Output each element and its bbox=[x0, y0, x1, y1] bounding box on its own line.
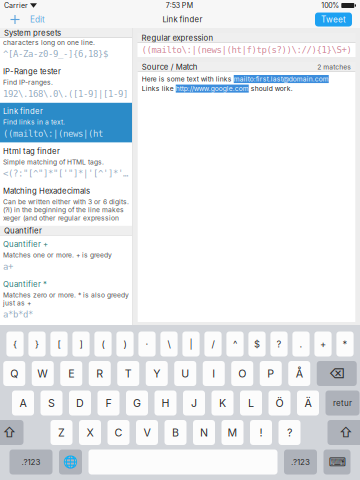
staticText: .?123 bbox=[21, 457, 40, 467]
button[interactable]: Quantifier * bbox=[0, 276, 132, 323]
button[interactable]: X bbox=[79, 420, 101, 445]
button[interactable]: Optionality ? bbox=[0, 323, 132, 340]
button[interactable]: ] bbox=[72, 331, 90, 356]
staticText: N bbox=[200, 426, 208, 439]
button[interactable]: .?123 bbox=[284, 449, 317, 474]
staticText: ⌨ bbox=[328, 455, 345, 469]
button[interactable]: ? bbox=[278, 420, 300, 445]
button[interactable]: W bbox=[32, 361, 54, 386]
staticText: a*b*d* bbox=[3, 309, 33, 320]
button[interactable]: T bbox=[117, 361, 139, 386]
button[interactable]: [ bbox=[50, 331, 68, 356]
button[interactable]: Link finder bbox=[0, 103, 132, 143]
button[interactable]: Html tag finder bbox=[0, 143, 132, 182]
button[interactable]: . bbox=[292, 331, 310, 356]
staticText: Ö bbox=[275, 396, 283, 409]
button[interactable]: / bbox=[204, 331, 222, 356]
button[interactable]: * bbox=[336, 331, 354, 356]
button[interactable]: ? bbox=[270, 331, 288, 356]
button[interactable]: ⇧ bbox=[0, 420, 23, 445]
button[interactable]: Add preset bbox=[5, 11, 25, 27]
button[interactable]: R bbox=[89, 361, 111, 386]
button[interactable]: S bbox=[40, 390, 62, 415]
button[interactable]: ⇧ bbox=[327, 420, 360, 445]
staticText: Find IP-ranges. bbox=[3, 78, 53, 86]
button[interactable]: Z bbox=[50, 420, 72, 445]
staticText: H bbox=[161, 396, 169, 409]
button[interactable]: 🌐 bbox=[59, 449, 82, 474]
button[interactable]: { bbox=[6, 331, 24, 356]
button[interactable]: Ö bbox=[268, 390, 290, 415]
staticText: ⇧ bbox=[339, 424, 353, 440]
staticText: ) bbox=[123, 338, 126, 350]
button[interactable]: H bbox=[154, 390, 176, 415]
button[interactable]: retur bbox=[325, 390, 359, 415]
button[interactable]: G bbox=[126, 390, 148, 415]
button[interactable]: F bbox=[97, 390, 119, 415]
button[interactable]: M bbox=[221, 420, 243, 445]
button[interactable]: \ bbox=[160, 331, 178, 356]
staticText: { bbox=[13, 338, 17, 350]
button[interactable]: J bbox=[183, 390, 205, 415]
staticText: T bbox=[125, 367, 132, 380]
button[interactable]: Quantifier + bbox=[0, 236, 132, 276]
button[interactable]: ⌫ bbox=[317, 361, 357, 386]
staticText: Quantifier * bbox=[3, 279, 47, 289]
button[interactable]: Matching Hexadecimals bbox=[0, 182, 132, 226]
staticText: U bbox=[181, 367, 189, 380]
button[interactable]: B bbox=[164, 420, 186, 445]
button[interactable]: $ bbox=[248, 331, 266, 356]
staticText: ? bbox=[276, 338, 281, 350]
staticText: Optionality ? bbox=[3, 327, 50, 337]
button[interactable]: K bbox=[211, 390, 233, 415]
button[interactable]: } bbox=[28, 331, 46, 356]
button[interactable]: characters long on one line. bbox=[0, 38, 132, 63]
staticText: ^[A-Za-z0-9_-]{6,18}$ bbox=[3, 49, 108, 59]
staticText: Matching Hexadecimals bbox=[3, 186, 90, 196]
button[interactable]: Edit bbox=[25, 11, 50, 27]
button[interactable]: Y bbox=[146, 361, 168, 386]
button[interactable]: U bbox=[174, 361, 196, 386]
button[interactable]: Å bbox=[288, 361, 310, 386]
button[interactable]: Q bbox=[3, 361, 25, 386]
button[interactable]: .?123 bbox=[9, 449, 52, 474]
button[interactable]: P bbox=[260, 361, 282, 386]
button[interactable]: D bbox=[69, 390, 91, 415]
staticText: $ bbox=[254, 338, 260, 350]
button[interactable]: ! bbox=[250, 420, 272, 445]
staticText: · bbox=[145, 338, 148, 350]
button[interactable]: C bbox=[107, 420, 129, 445]
staticText: Quantifier + bbox=[3, 240, 48, 249]
button[interactable]: N bbox=[193, 420, 215, 445]
staticText: Link finder bbox=[3, 107, 43, 116]
button[interactable]: E bbox=[60, 361, 82, 386]
button[interactable]: V bbox=[136, 420, 158, 445]
staticText: Source / Match bbox=[142, 62, 198, 72]
button[interactable]: Ä bbox=[297, 390, 319, 415]
button[interactable]: I bbox=[203, 361, 225, 386]
button[interactable]: ⌨ bbox=[323, 449, 350, 474]
button[interactable]: · bbox=[138, 331, 156, 356]
staticText: G bbox=[133, 396, 141, 409]
staticText: 7:53 PM bbox=[166, 1, 193, 10]
button[interactable]: | bbox=[182, 331, 200, 356]
button[interactable]: ) bbox=[116, 331, 134, 356]
staticText: ( bbox=[101, 338, 104, 350]
button[interactable]: A bbox=[12, 390, 34, 415]
staticText: Tweet bbox=[321, 14, 346, 24]
staticText: Here is some text with links bbox=[142, 75, 234, 83]
button[interactable]: IP-Range tester bbox=[0, 63, 132, 103]
button[interactable]: ^ bbox=[226, 331, 244, 356]
staticText: P bbox=[267, 367, 274, 380]
button[interactable]: + bbox=[314, 331, 332, 356]
button[interactable]: L bbox=[240, 390, 262, 415]
button[interactable]: O bbox=[231, 361, 253, 386]
button[interactable]: Tweet bbox=[315, 12, 352, 26]
button[interactable]: ( bbox=[94, 331, 112, 356]
staticText: Link finder bbox=[162, 15, 202, 24]
staticText: should work. bbox=[249, 85, 293, 93]
staticText: Can be written either with 3 or 6 digits… bbox=[3, 198, 129, 222]
staticText: L bbox=[248, 396, 254, 409]
staticText: Edit bbox=[30, 14, 45, 24]
